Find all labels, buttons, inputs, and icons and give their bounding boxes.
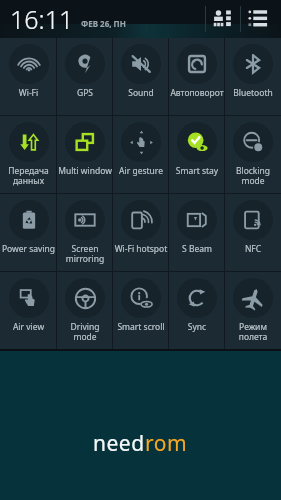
staticText: Smart stay — [170, 165, 224, 177]
staticText: Bluetooth — [226, 87, 280, 99]
button[interactable]: NFC — [225, 194, 281, 271]
button[interactable]: GPS — [57, 38, 113, 115]
staticText: Air view — [1, 321, 56, 333]
staticText: need — [93, 429, 145, 458]
button[interactable]: Air view — [0, 272, 57, 349]
button[interactable]: Screen mirroring — [57, 194, 113, 271]
button[interactable]: Wi-Fi hotspot — [113, 194, 169, 271]
staticText: 16:11 — [10, 2, 74, 36]
staticText: NFC — [226, 243, 280, 255]
button[interactable]: Sound — [113, 38, 169, 115]
button[interactable]: Power saving — [0, 194, 57, 271]
button[interactable]: Multi window — [57, 116, 113, 193]
button[interactable]: Автоповорот — [169, 38, 225, 115]
button[interactable]: Передача данных — [0, 116, 57, 193]
staticText: Driving mode — [58, 321, 112, 342]
staticText: Air gesture — [114, 165, 168, 177]
button[interactable]: S Beam — [169, 194, 225, 271]
staticText: Sync — [170, 321, 224, 333]
button[interactable]: Air gesture — [113, 116, 169, 193]
staticText: Режим полета — [226, 321, 280, 342]
button[interactable]: Bluetooth — [225, 38, 281, 115]
button[interactable]: Sync — [169, 272, 225, 349]
staticText: Wi-Fi — [1, 87, 56, 99]
button[interactable]: Driving mode — [57, 272, 113, 349]
button[interactable]: Blocking mode — [225, 116, 281, 193]
button[interactable]: Smart scroll — [113, 272, 169, 349]
staticText: S Beam — [170, 243, 224, 255]
button[interactable]: Wi-Fi — [0, 38, 57, 115]
button[interactable]: Режим полета — [225, 272, 281, 349]
staticText: Передача данных — [1, 165, 56, 186]
button[interactable]: Smart stay — [169, 116, 225, 193]
staticText: Power saving — [1, 243, 56, 255]
staticText: Sound — [114, 87, 168, 99]
staticText: Wi-Fi hotspot — [114, 243, 168, 255]
staticText: Smart scroll — [114, 321, 168, 333]
staticText: GPS — [58, 87, 112, 99]
button[interactable]: Notifications list — [241, 2, 275, 36]
staticText: Автоповорот — [170, 87, 224, 99]
staticText: Screen mirroring — [58, 243, 112, 264]
staticText: ФЕВ 26, ПН — [81, 18, 126, 29]
staticText: Blocking mode — [226, 165, 280, 186]
staticText: Multi window — [58, 165, 112, 177]
button[interactable]: Users — [206, 2, 240, 36]
staticText: rom — [145, 429, 188, 458]
